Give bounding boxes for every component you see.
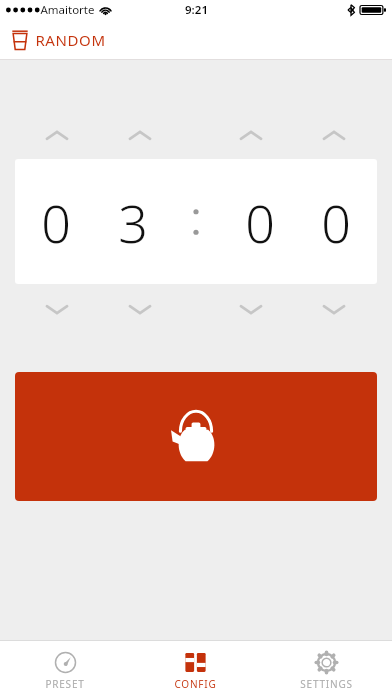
button[interactable]: Increase tens of hours [38, 122, 76, 148]
staticText: 0 [245, 187, 275, 257]
button[interactable]: Decrease tens of hours [38, 296, 76, 322]
button[interactable]: PRESET [0, 646, 130, 691]
button[interactable]: 0 [15, 159, 377, 284]
staticText: 0 [41, 187, 71, 257]
button[interactable]: Increase minutes [315, 122, 353, 148]
staticText: CONFIG [174, 677, 217, 691]
button[interactable]: CONFIG [130, 646, 261, 691]
staticText: PRESET [45, 677, 85, 691]
button[interactable]: Increase hours [121, 122, 159, 148]
button[interactable]: RANDOM [0, 20, 392, 59]
staticText: 3 [118, 187, 148, 257]
button[interactable]: Increase tens of minutes [232, 122, 270, 148]
button[interactable]: Decrease minutes [315, 296, 353, 322]
button[interactable]: SETTINGS [261, 646, 392, 691]
button[interactable]: Decrease tens of minutes [232, 296, 270, 322]
button[interactable]: Start brewing [15, 372, 377, 501]
staticText: SETTINGS [300, 677, 353, 691]
staticText: RANDOM [35, 30, 106, 50]
staticText: 9:21 [185, 2, 208, 18]
button[interactable]: Decrease hours [121, 296, 159, 322]
staticText: 0 [321, 187, 351, 257]
staticText: Amaitorte [40, 2, 95, 18]
